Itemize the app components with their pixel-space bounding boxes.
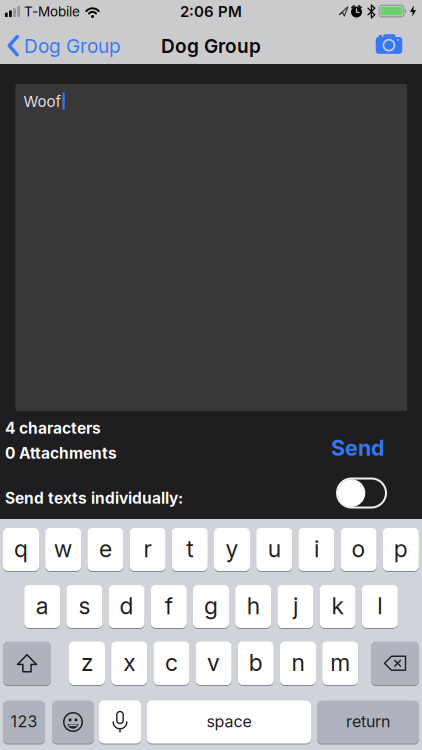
staticText: p <box>394 535 408 563</box>
button[interactable]: Delete <box>371 641 419 685</box>
button[interactable]: o <box>341 528 377 571</box>
staticText: s <box>78 592 90 620</box>
staticText: i <box>314 535 319 563</box>
button[interactable]: b <box>238 641 274 685</box>
staticText: n <box>291 649 304 677</box>
staticText: T-Mobile <box>24 3 80 20</box>
staticText: Send texts individually: <box>5 489 183 507</box>
staticText: x <box>123 649 135 677</box>
staticText: Send <box>331 435 384 461</box>
button[interactable]: a <box>24 585 60 628</box>
staticText: w <box>54 535 73 563</box>
button[interactable]: h <box>235 585 271 628</box>
staticText: 123 <box>10 712 37 731</box>
button[interactable]: n <box>280 641 316 685</box>
button[interactable]: w <box>45 528 81 571</box>
staticText: z <box>81 649 93 677</box>
staticText: g <box>204 592 218 620</box>
staticText: Dog Group <box>161 34 261 57</box>
staticText: e <box>99 535 112 563</box>
button[interactable]: x <box>111 641 147 685</box>
staticText: h <box>247 592 260 620</box>
staticText: y <box>225 535 238 563</box>
staticText: f <box>165 592 173 620</box>
button[interactable]: Camera <box>370 31 408 57</box>
staticText: m <box>330 649 350 677</box>
staticText: c <box>165 649 178 677</box>
button[interactable]: Dictate <box>99 700 141 743</box>
button[interactable]: c <box>153 641 189 685</box>
staticText: 0 Attachments <box>5 444 117 462</box>
staticText: Dog Group <box>24 34 121 57</box>
staticText: v <box>207 649 220 677</box>
button[interactable]: f <box>151 585 187 628</box>
button[interactable]: i <box>298 528 334 571</box>
button[interactable]: return <box>317 700 419 743</box>
button[interactable]: z <box>69 641 105 685</box>
button[interactable]: j <box>277 585 313 628</box>
button[interactable]: Shift <box>3 641 51 685</box>
button[interactable]: p <box>383 528 419 571</box>
staticText: Woof <box>23 92 61 111</box>
button[interactable]: Send texts individually <box>336 477 387 508</box>
button[interactable]: Send <box>284 435 384 461</box>
staticText: t <box>186 535 193 563</box>
button[interactable]: y <box>214 528 250 571</box>
button[interactable]: Emoji <box>52 700 94 743</box>
button[interactable]: k <box>320 585 356 628</box>
button[interactable]: m <box>322 641 358 685</box>
button[interactable]: Dog Group <box>8 34 178 57</box>
button[interactable]: t <box>172 528 208 571</box>
staticText: r <box>144 535 152 563</box>
staticText: j <box>293 592 298 620</box>
button[interactable]: d <box>109 585 145 628</box>
button[interactable]: r <box>130 528 166 571</box>
button[interactable]: e <box>87 528 123 571</box>
staticText: q <box>14 535 28 563</box>
button[interactable]: 123 <box>3 700 45 743</box>
staticText: space <box>206 712 251 731</box>
button[interactable]: v <box>196 641 232 685</box>
button[interactable]: g <box>193 585 229 628</box>
staticText: u <box>268 535 281 563</box>
staticText: d <box>120 592 134 620</box>
staticText: b <box>249 649 263 677</box>
button[interactable]: space <box>147 700 311 743</box>
staticText: return <box>346 712 390 731</box>
staticText: a <box>36 592 49 620</box>
staticText: l <box>377 592 382 620</box>
staticText: o <box>352 535 366 563</box>
staticText: k <box>332 592 344 620</box>
staticText: 2:06 PM <box>180 2 242 20</box>
button[interactable]: q <box>3 528 39 571</box>
button[interactable]: s <box>66 585 102 628</box>
button[interactable]: l <box>362 585 398 628</box>
button[interactable]: u <box>256 528 292 571</box>
staticText: 4 characters <box>5 419 101 437</box>
